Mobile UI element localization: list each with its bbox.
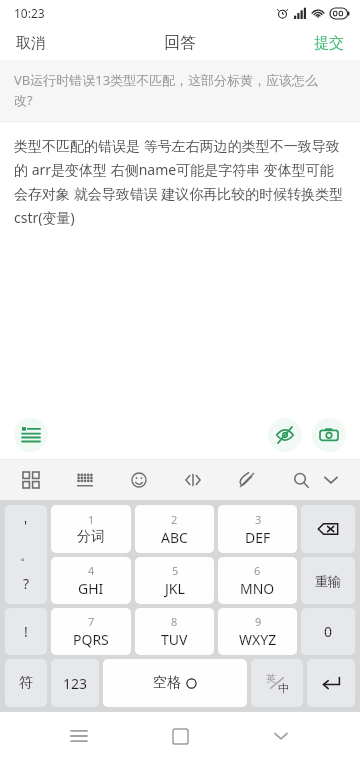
button[interactable]: 1 (51, 505, 131, 553)
staticText: 回答 (164, 33, 196, 53)
button[interactable]: 提交 (298, 28, 360, 59)
button[interactable]: 123 (51, 659, 99, 707)
staticText: JKL (165, 579, 185, 598)
button[interactable]: Back (259, 714, 303, 758)
staticText: 1 (88, 512, 95, 527)
button[interactable]: 9 (218, 608, 297, 655)
staticText: MNO (240, 579, 275, 598)
button[interactable]: Camera (312, 418, 346, 452)
staticText: 符 (19, 674, 33, 692)
button[interactable]: Home (158, 714, 202, 758)
staticText: WXYZ (239, 630, 277, 649)
staticText: TUV (161, 630, 188, 649)
staticText: ' (24, 516, 28, 535)
staticText: 改? (14, 91, 33, 109)
staticText: 8 (171, 614, 178, 629)
button[interactable]: 0 (301, 608, 355, 655)
button[interactable]: Search (288, 467, 314, 493)
staticText: 5 (172, 563, 179, 578)
button[interactable]: Anonymous (268, 418, 302, 452)
button[interactable]: 空格 (103, 659, 247, 707)
button[interactable]: Recents (57, 714, 101, 758)
staticText: 3 (255, 512, 262, 527)
button[interactable]: Apps (18, 467, 44, 493)
staticText: 空格 (153, 674, 181, 692)
staticText: 10:23 (14, 5, 45, 21)
button[interactable]: Keyboard (72, 467, 98, 493)
staticText: 取消 (16, 34, 46, 53)
staticText: VB运行时错误13类型不匹配，这部分标黄，应该怎么 (14, 71, 346, 89)
staticText: GHI (78, 579, 104, 598)
staticText: 6 (254, 563, 261, 578)
button[interactable]: Code (180, 467, 206, 493)
button[interactable]: Attach (234, 467, 260, 493)
staticText: ? (23, 574, 30, 593)
button[interactable]: Enter (307, 659, 355, 707)
staticText: 2 (171, 512, 178, 527)
staticText: 分词 (77, 528, 105, 546)
button[interactable]: 英 (251, 659, 303, 707)
staticText: PQRS (73, 630, 109, 649)
button[interactable]: 取消 (0, 28, 62, 59)
button[interactable]: 6 (218, 557, 297, 604)
staticText: 英 (266, 672, 276, 685)
staticText: 中 (278, 681, 289, 695)
staticText: 。 (20, 547, 33, 563)
staticText: 重输 (315, 573, 341, 589)
staticText: 提交 (314, 34, 344, 53)
staticText: ABC (161, 528, 188, 547)
button[interactable]: Emoji (126, 467, 152, 493)
staticText: 类型不匹配的错误是 等号左右两边的类型不一致导致的 arr是变体型 右侧name… (14, 136, 346, 227)
staticText: ! (24, 622, 28, 641)
staticText: 9 (255, 614, 262, 629)
button[interactable]: Backspace (301, 505, 355, 553)
button[interactable]: 8 (135, 608, 214, 655)
button[interactable]: 2 (135, 505, 214, 553)
button[interactable]: 4 (51, 557, 131, 604)
staticText: 123 (63, 674, 88, 693)
staticText: 4 (88, 563, 95, 578)
button[interactable]: Formatting (14, 418, 48, 452)
button[interactable]: Hide keyboard (316, 465, 346, 495)
staticText: 0 (324, 622, 333, 641)
button[interactable]: 3 (218, 505, 297, 553)
button[interactable]: 重输 (301, 557, 355, 604)
button[interactable]: ! (5, 608, 47, 655)
staticText: DEF (245, 528, 271, 547)
staticText: 7 (88, 614, 95, 629)
button[interactable]: 7 (51, 608, 131, 655)
button[interactable]: ' (5, 505, 47, 604)
button[interactable]: 符 (5, 659, 47, 707)
button[interactable]: 5 (135, 557, 214, 604)
